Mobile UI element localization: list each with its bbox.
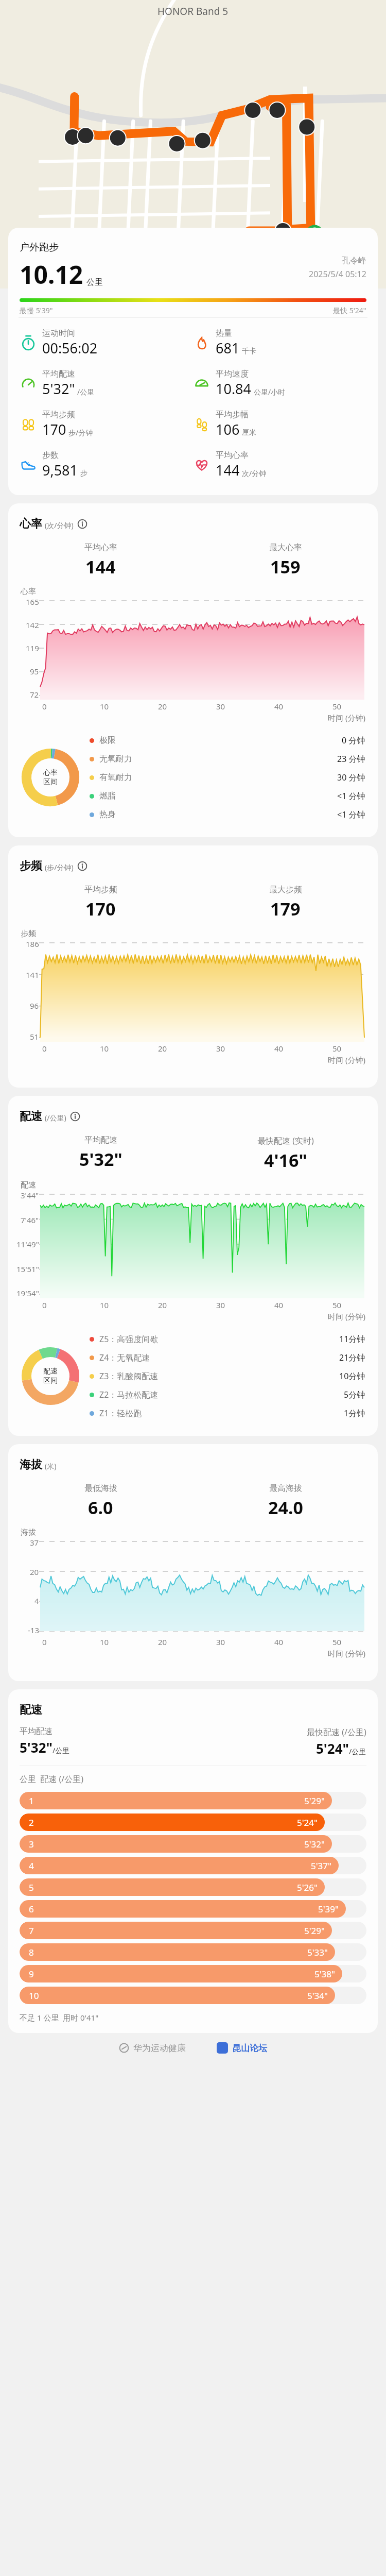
button[interactable]: 4 — [20, 1857, 366, 1874]
staticText: 19'54" — [16, 1288, 39, 1298]
staticText: 50 — [332, 1043, 342, 1054]
staticText: 5分钟 — [344, 1389, 365, 1400]
staticText: 7 — [29, 1925, 34, 1937]
staticText: 平均心率 — [84, 543, 117, 553]
staticText: 119 — [26, 643, 39, 653]
staticText: 20 — [158, 1637, 167, 1647]
staticText: 5 — [29, 1882, 34, 1893]
staticText: 心率 — [43, 768, 58, 777]
button[interactable]: 8 — [20, 1943, 366, 1961]
staticText: 96 — [30, 1001, 39, 1011]
staticText: Z4：无氧配速 — [99, 1352, 150, 1363]
staticText: 37 — [30, 1537, 39, 1548]
staticText: 0 — [42, 1300, 47, 1310]
staticText: 15'51" — [16, 1264, 39, 1274]
staticText: 最快 5'24" — [333, 306, 366, 315]
button[interactable]: 7 — [20, 1922, 366, 1939]
staticText: 170 — [85, 897, 116, 921]
staticText: 公里 — [86, 277, 103, 287]
staticText: <1 分钟 — [337, 790, 365, 802]
staticText: 20 — [158, 1043, 167, 1054]
staticText: 4'16" — [264, 1148, 307, 1172]
staticText: 40 — [274, 1637, 284, 1647]
staticText: 平均配速 — [84, 1135, 117, 1145]
staticText: -13 — [28, 1625, 39, 1635]
staticText: Z1：轻松跑 — [99, 1408, 142, 1419]
staticText: 时间 (分钟) — [328, 713, 365, 723]
staticText: 步/分钟 — [68, 428, 93, 437]
staticText: 10.84 — [216, 379, 252, 398]
staticText: 40 — [274, 1043, 284, 1054]
staticText: 30 — [216, 1300, 225, 1310]
button[interactable]: 2 — [20, 1814, 366, 1831]
staticText: 5'26" — [297, 1882, 318, 1893]
staticText: 平均心率 — [216, 450, 249, 461]
staticText: 配速 — [20, 1109, 42, 1124]
staticText: 平均配速 — [42, 369, 75, 379]
staticText: 50 — [332, 1637, 342, 1647]
staticText: 3 — [29, 1838, 34, 1850]
staticText: 30 — [216, 1637, 225, 1647]
staticText: 2025/5/4 05:12 — [309, 268, 366, 280]
staticText: /公里 — [349, 1747, 366, 1756]
staticText: 孔令峰 — [342, 256, 366, 266]
staticText: 20 — [158, 1300, 167, 1310]
staticText: /公里 — [77, 387, 95, 397]
staticText: (米) — [45, 1461, 57, 1471]
staticText: 11'49" — [16, 1239, 39, 1249]
staticText: 区间 — [43, 1376, 58, 1385]
staticText: 配速 — [20, 1703, 42, 1717]
staticText: 5'24" — [297, 1817, 318, 1828]
staticText: 9,581 — [42, 461, 78, 480]
staticText: 步频 — [21, 929, 36, 939]
staticText: 5'29" — [304, 1925, 325, 1937]
button[interactable]: 9 — [20, 1965, 366, 1982]
staticText: 142 — [26, 620, 39, 630]
staticText: 5'32" — [42, 379, 75, 398]
staticText: 平均配速 — [20, 1726, 52, 1737]
staticText: 热量 — [216, 328, 232, 338]
staticText: 户外跑步 — [20, 241, 59, 253]
staticText: 30 — [216, 701, 225, 711]
button[interactable]: Info about 步频 — [77, 861, 87, 871]
staticText: 7'46" — [21, 1215, 39, 1225]
button[interactable]: 3 — [20, 1835, 366, 1853]
staticText: Z2：马拉松配速 — [99, 1389, 159, 1400]
staticText: 配速 — [43, 1367, 58, 1376]
staticText: 无氧耐力 — [99, 754, 132, 764]
button[interactable]: 6 — [20, 1900, 366, 1918]
staticText: 最低海拔 — [84, 1483, 117, 1494]
button[interactable]: Info about 心率 — [77, 519, 87, 529]
staticText: 10 — [100, 1300, 109, 1310]
staticText: 72 — [30, 689, 39, 700]
staticText: 厘米 — [242, 428, 256, 437]
staticText: 51 — [30, 1031, 39, 1042]
staticText: 华为运动健康 — [133, 2043, 186, 2054]
staticText: 9 — [29, 1968, 34, 1980]
staticText: 8 — [29, 1946, 34, 1958]
button[interactable]: 10 — [20, 1987, 366, 2004]
staticText: 4 — [29, 1860, 34, 1872]
staticText: 平均步频 — [42, 410, 75, 420]
staticText: 5'29" — [304, 1795, 325, 1807]
staticText: 0 — [42, 1043, 47, 1054]
staticText: 10分钟 — [339, 1370, 365, 1382]
staticText: 心率 — [21, 587, 36, 597]
staticText: 144 — [216, 461, 240, 480]
button[interactable]: Info about 配速 — [70, 1111, 80, 1122]
staticText: 20 — [158, 701, 167, 711]
staticText: 配速 — [21, 1180, 36, 1190]
button[interactable]: 1 — [20, 1792, 366, 1809]
staticText: 海拔 — [21, 1528, 36, 1537]
staticText: 5'37" — [311, 1860, 331, 1872]
staticText: 95 — [30, 666, 39, 676]
staticText: 0 — [42, 701, 47, 711]
staticText: 不足 1 公里 用时 0'41" — [20, 2012, 99, 2023]
staticText: 有氧耐力 — [99, 772, 132, 783]
button[interactable]: 5 — [20, 1878, 366, 1896]
staticText: 时间 (分钟) — [328, 1311, 365, 1321]
staticText: 141 — [26, 970, 39, 980]
staticText: 165 — [26, 597, 39, 607]
staticText: 5'38" — [314, 1968, 335, 1980]
staticText: 30 — [216, 1043, 225, 1054]
